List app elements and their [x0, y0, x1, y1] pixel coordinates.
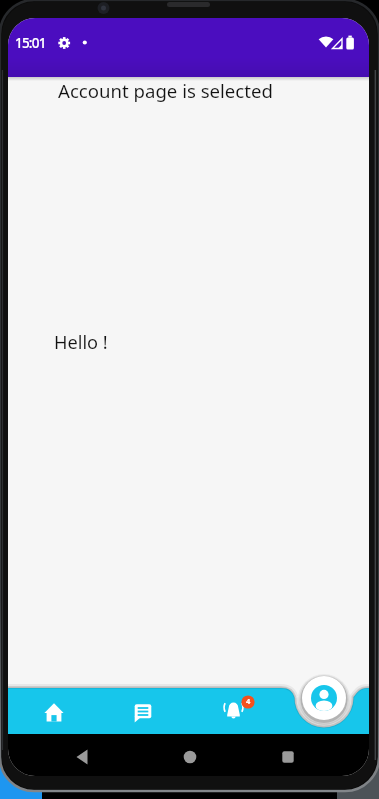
- staticText: Hello !: [54, 330, 108, 355]
- button[interactable]: [302, 676, 346, 720]
- button[interactable]: [264, 735, 312, 779]
- button[interactable]: [210, 688, 258, 734]
- staticText: Account page is selected: [58, 78, 273, 103]
- button[interactable]: [166, 735, 214, 779]
- staticText: 4: [246, 696, 251, 706]
- button[interactable]: [58, 735, 106, 779]
- button[interactable]: [30, 688, 78, 734]
- staticText: 15:01: [15, 34, 46, 52]
- button[interactable]: [119, 688, 167, 734]
